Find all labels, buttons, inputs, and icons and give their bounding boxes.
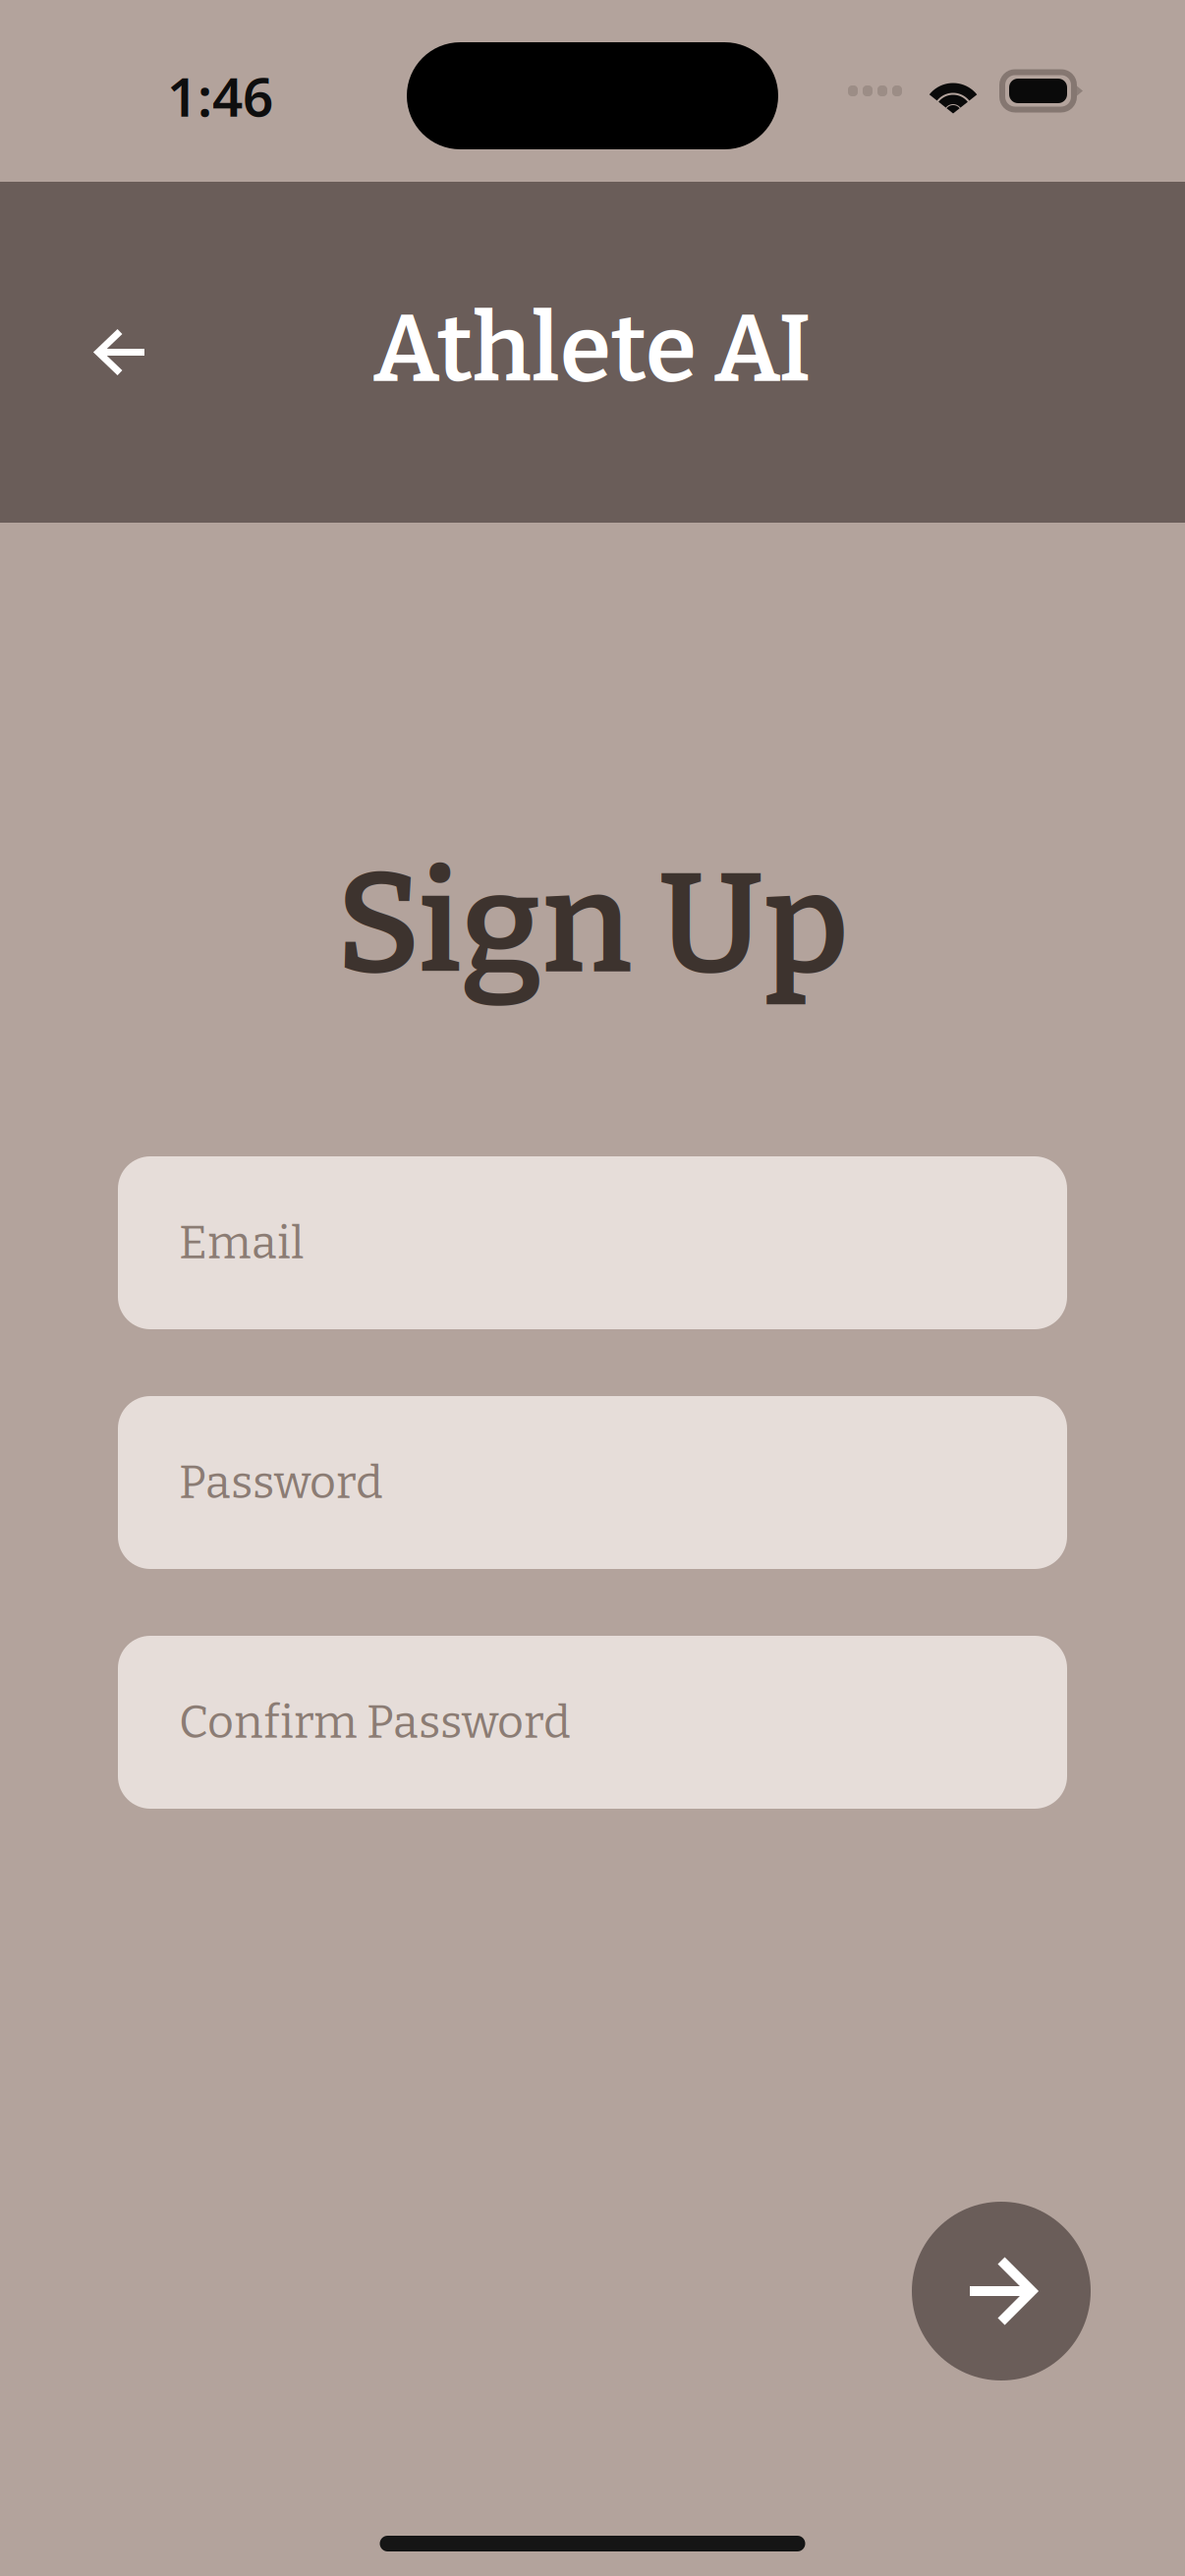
staticText: Confirm Password [179,1695,571,1750]
button[interactable]: Email [118,1156,1067,1329]
button[interactable]: Back [63,293,181,411]
button[interactable]: Continue [912,2202,1091,2380]
staticText: Password [179,1455,383,1510]
button[interactable]: Password [118,1396,1067,1569]
staticText: Sign Up [336,839,849,1009]
staticText: Email [179,1215,304,1270]
staticText: Athlete AI [373,293,812,405]
staticText: 1:46 [167,60,273,131]
button[interactable]: Confirm Password [118,1636,1067,1809]
